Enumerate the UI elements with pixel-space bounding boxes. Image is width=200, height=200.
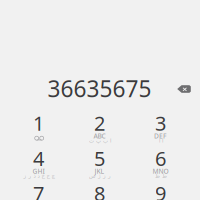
button[interactable]: Delete	[170, 76, 198, 102]
staticText: 5	[94, 145, 105, 171]
staticText: چ ح خ د ذ ر ز	[23, 173, 54, 179]
staticText: 4	[33, 145, 44, 171]
button[interactable]: 8	[69, 181, 130, 200]
button[interactable]: 3	[130, 110, 191, 150]
button[interactable]: 4	[8, 146, 69, 186]
staticText: JKL	[94, 167, 104, 176]
staticText: 3	[155, 110, 166, 136]
button[interactable]: 2	[69, 110, 130, 150]
staticText: GHI	[32, 167, 44, 176]
staticText: 6	[155, 145, 166, 171]
button[interactable]: 6	[130, 146, 191, 186]
staticText: ا ا	[158, 138, 162, 144]
staticText: MNO	[152, 167, 168, 176]
staticText: DEF	[154, 131, 167, 140]
button[interactable]: 1	[8, 110, 69, 150]
button[interactable]: 7	[8, 181, 69, 200]
button[interactable]: 9	[130, 181, 191, 200]
staticText: 7	[33, 180, 44, 200]
staticText: ا ب پ ت	[88, 138, 110, 144]
button[interactable]: 5	[69, 146, 130, 186]
staticText: 1	[33, 110, 44, 136]
staticText: 2	[94, 110, 105, 136]
staticText: ر ز ژ س	[88, 173, 110, 179]
staticText: ABC	[93, 131, 105, 140]
staticText: 36635675	[47, 73, 151, 103]
staticText: 9	[155, 180, 166, 200]
staticText: ط ظ	[154, 173, 166, 179]
staticText: 8	[94, 180, 105, 200]
